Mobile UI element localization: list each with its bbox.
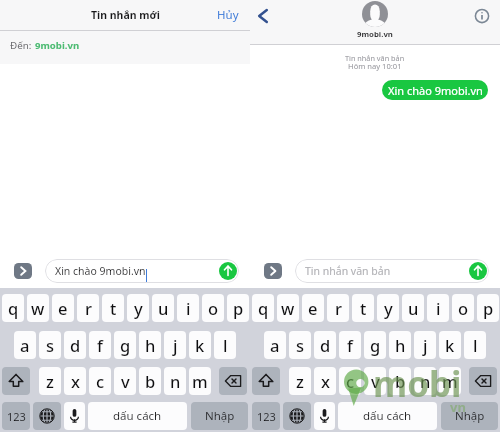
staticText: k — [445, 334, 455, 356]
button[interactable]: x — [64, 367, 86, 395]
button[interactable]: Xin chào 9mobi.vn — [382, 80, 488, 100]
button[interactable]: j — [164, 331, 186, 359]
button[interactable]: Back — [253, 6, 273, 26]
button[interactable]: s — [39, 331, 61, 359]
button[interactable]: Xin chào 9mobi.vn — [45, 259, 239, 283]
staticText: l — [223, 334, 228, 356]
button[interactable]: y — [127, 294, 149, 322]
button[interactable]: g — [364, 331, 386, 359]
button[interactable]: e — [52, 294, 74, 322]
button[interactable]: r — [77, 294, 99, 322]
button[interactable]: Numbers — [252, 402, 280, 430]
button[interactable]: f — [89, 331, 111, 359]
button[interactable]: More apps — [14, 263, 32, 279]
staticText: dấu cách — [363, 408, 412, 424]
staticText: r — [335, 297, 342, 319]
button[interactable]: o — [452, 294, 474, 322]
button[interactable]: u — [402, 294, 424, 322]
button[interactable]: Backspace — [469, 367, 497, 395]
button[interactable]: h — [139, 331, 161, 359]
button[interactable]: Nhập — [191, 402, 248, 430]
button[interactable]: m — [189, 367, 211, 395]
staticText: o — [458, 297, 469, 319]
staticText: u — [158, 297, 169, 319]
button[interactable]: Shift — [2, 367, 30, 395]
staticText: s — [296, 334, 305, 356]
button[interactable]: i — [427, 294, 449, 322]
button[interactable]: n — [414, 367, 436, 395]
button[interactable]: q — [2, 294, 24, 322]
staticText: e — [308, 297, 318, 319]
button[interactable]: e — [302, 294, 324, 322]
button[interactable]: Shift — [252, 367, 280, 395]
staticText: Tin nhắn văn bản — [345, 53, 405, 63]
staticText: i — [186, 297, 191, 319]
button[interactable]: y — [377, 294, 399, 322]
button[interactable]: dấu cách — [88, 402, 187, 430]
button[interactable]: dấu cách — [338, 402, 437, 430]
staticText: a — [20, 334, 30, 356]
button[interactable]: k — [189, 331, 211, 359]
button[interactable]: w — [27, 294, 49, 322]
button[interactable]: a — [14, 331, 36, 359]
staticText: h — [145, 334, 156, 356]
staticText: w — [281, 297, 295, 319]
button[interactable]: t — [352, 294, 374, 322]
staticText: h — [395, 334, 406, 356]
button[interactable]: Send — [219, 262, 237, 280]
staticText: j — [173, 334, 178, 356]
button[interactable]: h — [389, 331, 411, 359]
staticText: y — [384, 297, 393, 319]
staticText: n — [170, 370, 181, 392]
button[interactable]: Info — [474, 8, 490, 24]
staticText: Xin chào 9mobi.vn — [55, 264, 146, 278]
button[interactable]: u — [152, 294, 174, 322]
button[interactable]: Nhập — [441, 402, 498, 430]
button[interactable]: k — [439, 331, 461, 359]
button[interactable]: q — [252, 294, 274, 322]
staticText: w — [31, 297, 45, 319]
button[interactable]: b — [139, 367, 161, 395]
staticText: m — [192, 370, 208, 392]
button[interactable]: z — [39, 367, 61, 395]
button[interactable]: Numbers — [2, 402, 30, 430]
button[interactable]: d — [64, 331, 86, 359]
button[interactable]: d — [314, 331, 336, 359]
button[interactable]: l — [464, 331, 486, 359]
button[interactable]: r — [327, 294, 349, 322]
button[interactable]: p — [227, 294, 249, 322]
button[interactable]: Change keyboard — [33, 402, 61, 430]
button[interactable]: j — [414, 331, 436, 359]
button[interactable]: a — [264, 331, 286, 359]
button[interactable]: o — [202, 294, 224, 322]
button[interactable]: x — [314, 367, 336, 395]
button[interactable]: t — [102, 294, 124, 322]
button[interactable]: b — [389, 367, 411, 395]
staticText: c — [96, 370, 105, 392]
button[interactable]: m — [439, 367, 461, 395]
staticText: z — [46, 370, 54, 392]
button[interactable]: l — [214, 331, 236, 359]
button[interactable]: c — [339, 367, 361, 395]
button[interactable]: Send — [469, 262, 487, 280]
button[interactable]: n — [164, 367, 186, 395]
staticText: b — [145, 370, 156, 392]
button[interactable]: w — [277, 294, 299, 322]
button[interactable]: z — [289, 367, 311, 395]
button[interactable]: Hủy — [217, 7, 239, 23]
button[interactable]: v — [364, 367, 386, 395]
staticText: p — [483, 297, 494, 319]
button[interactable]: Dictation — [314, 402, 335, 430]
button[interactable]: f — [339, 331, 361, 359]
button[interactable]: Tin nhắn văn bản — [295, 259, 489, 283]
button[interactable]: v — [114, 367, 136, 395]
button[interactable]: Dictation — [64, 402, 85, 430]
button[interactable]: p — [477, 294, 499, 322]
button[interactable]: Backspace — [219, 367, 247, 395]
button[interactable]: More apps — [264, 263, 282, 279]
button[interactable]: g — [114, 331, 136, 359]
button[interactable]: Change keyboard — [283, 402, 311, 430]
button[interactable]: s — [289, 331, 311, 359]
button[interactable]: i — [177, 294, 199, 322]
button[interactable]: c — [89, 367, 111, 395]
